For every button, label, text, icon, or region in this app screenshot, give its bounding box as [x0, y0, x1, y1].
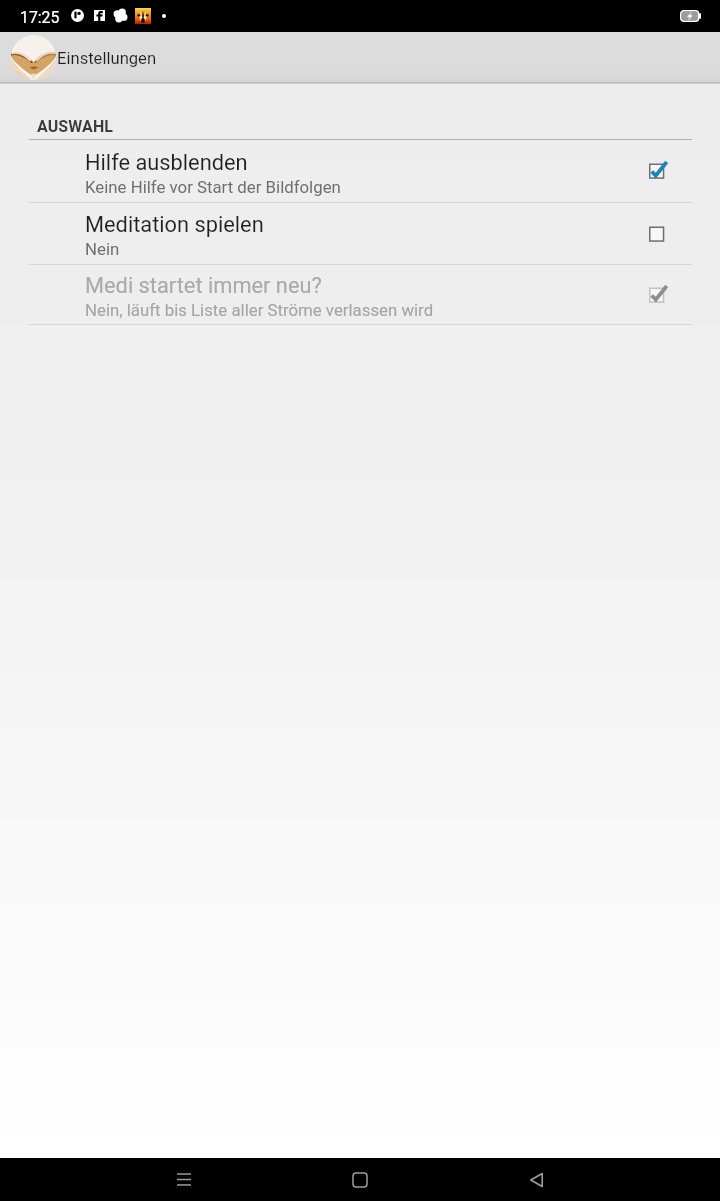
- staticText: Meditation spielen: [85, 212, 264, 238]
- button[interactable]: Back: [512, 1158, 560, 1201]
- staticText: Nein: [85, 239, 120, 259]
- staticText: Nein, läuft bis Liste aller Ströme verla…: [85, 300, 434, 320]
- staticText: Keine Hilfe vor Start der Bildfolgen: [85, 177, 341, 197]
- staticText: Hilfe ausblenden: [85, 150, 248, 176]
- staticText: AUSWAHL: [37, 117, 114, 136]
- staticText: Einstellungen: [57, 49, 157, 68]
- button[interactable]: Recent apps: [160, 1158, 208, 1201]
- staticText: Medi startet immer neu?: [85, 273, 322, 299]
- staticText: 17:25: [20, 8, 60, 27]
- button[interactable]: Home: [336, 1158, 384, 1201]
- button[interactable]: Hilfe ausblenden: [0, 140, 720, 203]
- button[interactable]: Meditation spielen: [0, 203, 720, 265]
- button[interactable]: Medi startet immer neu?: [0, 265, 720, 325]
